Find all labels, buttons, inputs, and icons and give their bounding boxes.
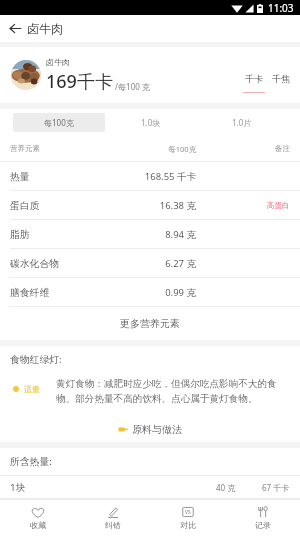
- staticText: 黄灯食物：减肥时应少吃，但偶尔吃点影响不大的食物。部分热量不高的饮料、点心属于黄…: [56, 378, 282, 405]
- button[interactable]: 千卡: [243, 73, 265, 93]
- button[interactable]: 纠错: [75, 500, 150, 536]
- staticText: 原料与做法: [132, 423, 182, 436]
- staticText: 膳食纤维: [10, 287, 50, 299]
- button[interactable]: 原料与做法: [0, 416, 300, 442]
- staticText: 卤牛肉: [27, 21, 63, 36]
- staticText: 8.94 克: [104, 228, 196, 241]
- staticText: 169千卡: [46, 69, 113, 94]
- staticText: 收藏: [30, 520, 46, 530]
- staticText: 高蛋白: [267, 201, 290, 210]
- staticText: 适量: [24, 384, 40, 394]
- button[interactable]: VS: [150, 500, 225, 536]
- staticText: 脂肪: [10, 229, 30, 241]
- staticText: 更多营养元素: [120, 317, 180, 330]
- staticText: 16.38 克: [104, 199, 196, 212]
- staticText: 每100克: [104, 144, 196, 154]
- button[interactable]: 1.0块: [105, 113, 196, 132]
- staticText: 千卡: [245, 73, 263, 84]
- staticText: 营养元素: [10, 144, 40, 153]
- staticText: 1块: [10, 481, 26, 494]
- staticText: 40 克: [216, 482, 236, 493]
- staticText: 千焦: [272, 73, 290, 84]
- staticText: 6.27 克: [104, 257, 196, 270]
- staticText: 67 千卡: [262, 482, 290, 493]
- button[interactable]: 1.0片: [196, 113, 287, 132]
- staticText: 1.0块: [141, 117, 161, 128]
- staticText: 所含热量:: [10, 455, 52, 468]
- staticText: 卤牛肉: [46, 57, 70, 67]
- staticText: 食物红绿灯:: [10, 353, 62, 366]
- staticText: 168.55 千卡: [104, 170, 196, 183]
- button[interactable]: 千焦: [270, 73, 292, 93]
- button[interactable]: 每100克: [13, 113, 105, 132]
- staticText: 1.0片: [232, 117, 252, 128]
- staticText: 每100克: [44, 117, 74, 128]
- staticText: 蛋白质: [10, 200, 40, 212]
- button[interactable]: Back: [4, 15, 27, 42]
- staticText: 0.99 克: [104, 286, 196, 299]
- staticText: /每100 克: [113, 81, 150, 92]
- staticText: 记录: [255, 520, 271, 530]
- button[interactable]: 收藏: [0, 500, 75, 536]
- staticText: 备注: [275, 144, 290, 153]
- staticText: 热量: [10, 171, 30, 183]
- staticText: VS: [185, 509, 191, 516]
- staticText: 碳水化合物: [10, 258, 59, 270]
- button[interactable]: 1块: [10, 476, 290, 498]
- staticText: 对比: [180, 520, 196, 530]
- button[interactable]: 记录: [225, 500, 300, 536]
- staticText: 11:03: [268, 1, 294, 15]
- button[interactable]: 更多营养元素: [0, 307, 300, 340]
- staticText: 纠错: [105, 520, 121, 530]
